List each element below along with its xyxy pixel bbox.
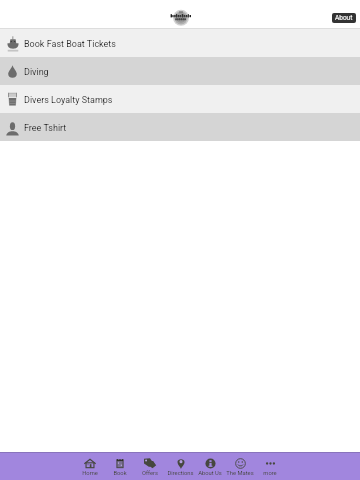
button[interactable]: Divers Loyalty Stamps [0, 85, 360, 113]
staticText: Offers [142, 470, 158, 477]
staticText: The Mates [226, 470, 254, 477]
button[interactable]: The Mates [225, 452, 255, 480]
staticText: About Us [198, 470, 222, 477]
button[interactable]: Diving [0, 57, 360, 85]
staticText: Diving [24, 67, 49, 78]
staticText: About [335, 14, 353, 22]
staticText: Free Tshirt [24, 123, 67, 134]
button[interactable]: Directions [165, 452, 195, 480]
button[interactable]: Whalers Home logo [171, 7, 191, 27]
staticText: Home [82, 470, 98, 477]
button[interactable]: Home [75, 452, 105, 480]
staticText: Directions [167, 470, 194, 477]
staticText: Book Fast Boat Tickets [24, 39, 116, 50]
button[interactable]: Book Fast Boat Tickets [0, 29, 360, 57]
button[interactable]: About Us [195, 452, 225, 480]
button[interactable]: Free Tshirt [0, 113, 360, 141]
button[interactable]: About [332, 13, 356, 23]
staticText: Divers Loyalty Stamps [24, 95, 113, 106]
staticText: more [263, 470, 277, 477]
button[interactable]: Book [105, 452, 135, 480]
button[interactable]: Offers [135, 452, 165, 480]
button[interactable]: more [255, 452, 285, 480]
staticText: Book [113, 470, 127, 477]
